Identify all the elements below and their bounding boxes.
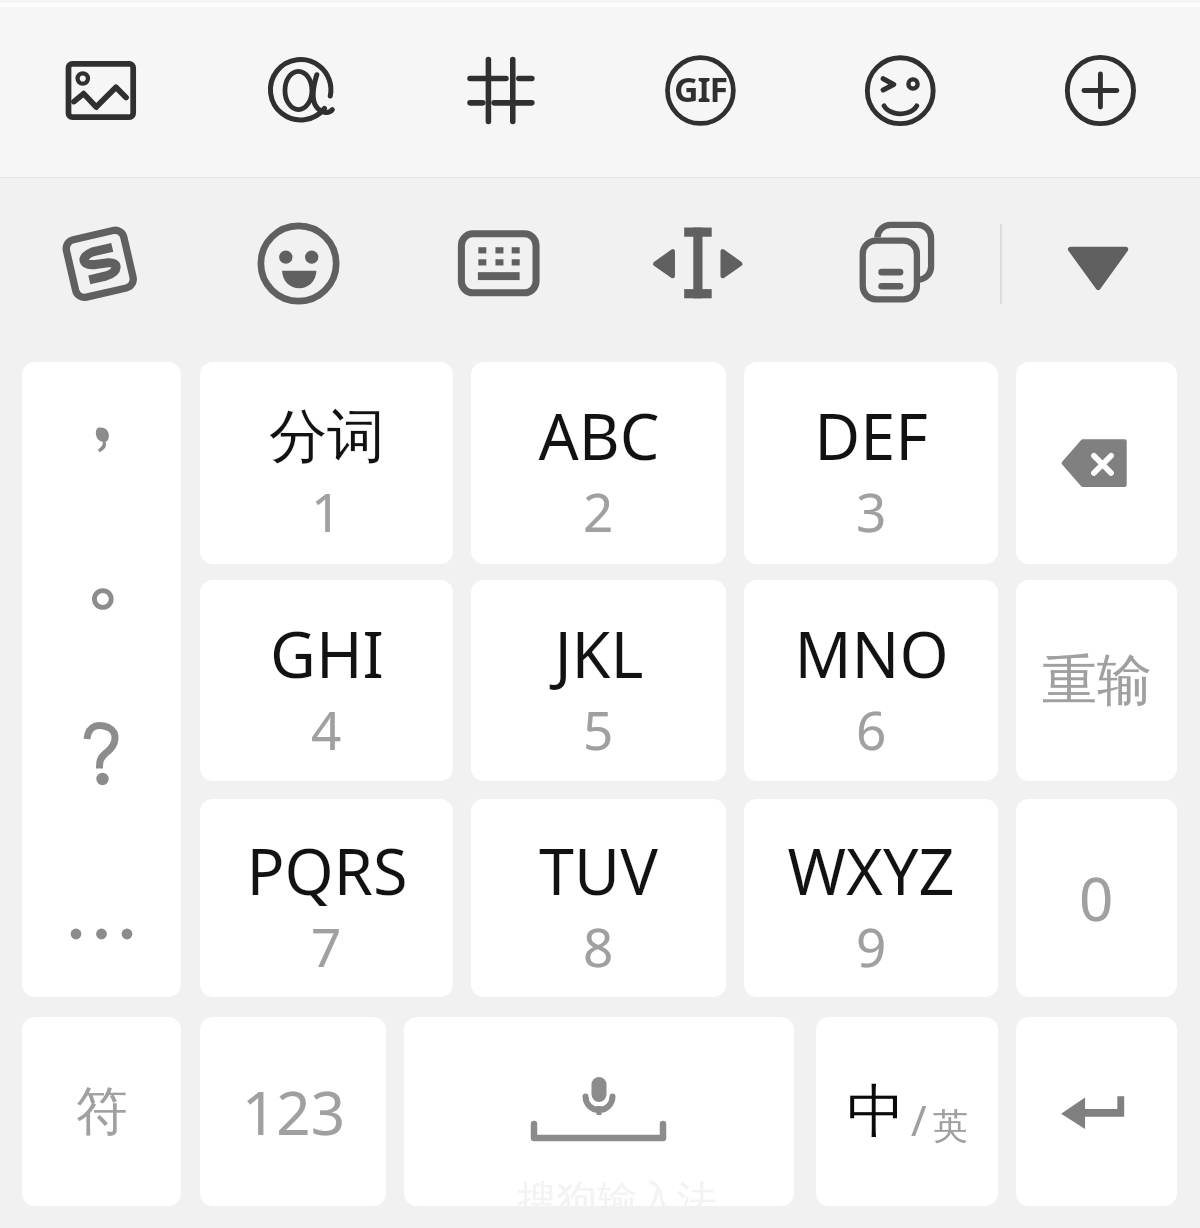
button[interactable]: Backspace	[1016, 362, 1177, 564]
staticText: 2	[583, 475, 614, 547]
staticText: GHI	[270, 611, 384, 697]
staticText: 4	[311, 693, 342, 765]
button[interactable]	[22, 362, 181, 997]
staticText: 0	[1079, 857, 1114, 939]
button[interactable]: 123	[200, 1017, 386, 1206]
button[interactable]: PQRS	[200, 799, 453, 997]
button[interactable]: Emoji	[800, 0, 1000, 177]
button[interactable]: Space	[404, 1017, 794, 1206]
staticText: /	[911, 1091, 927, 1148]
staticText: 1	[311, 475, 342, 547]
staticText: 123	[242, 1071, 345, 1153]
staticText: JKL	[554, 611, 644, 697]
button[interactable]: TUV	[471, 799, 726, 997]
staticText: MNO	[794, 611, 949, 697]
button[interactable]: JKL	[471, 580, 726, 781]
button[interactable]: GIF	[600, 0, 800, 177]
button[interactable]: DEF	[744, 362, 998, 564]
staticText: 7	[311, 910, 342, 982]
staticText: 重输	[1042, 646, 1152, 715]
staticText: 符	[76, 1079, 128, 1145]
button[interactable]: MNO	[744, 580, 998, 781]
button[interactable]: 分词	[200, 362, 453, 564]
staticText: 英	[933, 1104, 968, 1148]
staticText: 3	[856, 475, 887, 547]
button[interactable]: Mention	[200, 0, 400, 177]
button[interactable]: Keyboard layout	[400, 178, 600, 350]
staticText: ABC	[538, 393, 660, 479]
staticText: GIF	[674, 66, 727, 112]
staticText: 9	[856, 910, 887, 982]
staticText: DEF	[814, 393, 928, 479]
button[interactable]: WXYZ	[744, 799, 998, 997]
button[interactable]: 0	[1016, 799, 1177, 997]
staticText: WXYZ	[787, 828, 955, 914]
staticText: TUV	[539, 828, 658, 914]
staticText: 6	[856, 693, 887, 765]
button[interactable]: Clipboard	[800, 178, 1000, 350]
button[interactable]: Hide keyboard	[1000, 178, 1200, 350]
button[interactable]: Move cursor	[600, 178, 800, 350]
staticText: 中	[847, 1075, 905, 1148]
button[interactable]: Chinese English toggle	[816, 1017, 998, 1206]
staticText: 分词	[269, 400, 385, 473]
staticText: PQRS	[246, 828, 408, 914]
staticText: 5	[583, 693, 614, 765]
button[interactable]: GHI	[200, 580, 453, 781]
button[interactable]: Add	[1000, 0, 1200, 177]
button[interactable]: Sogou menu	[0, 178, 200, 350]
button[interactable]: Image	[0, 0, 200, 177]
staticText: 搜狗输入法	[517, 1175, 717, 1206]
button[interactable]: Emoji	[200, 178, 400, 350]
button[interactable]: ABC	[471, 362, 726, 564]
button[interactable]: Topic	[400, 0, 600, 177]
button[interactable]: 符	[22, 1017, 181, 1206]
button[interactable]: 重输	[1016, 580, 1177, 781]
staticText: 8	[583, 910, 614, 982]
button[interactable]: Enter	[1016, 1017, 1177, 1206]
